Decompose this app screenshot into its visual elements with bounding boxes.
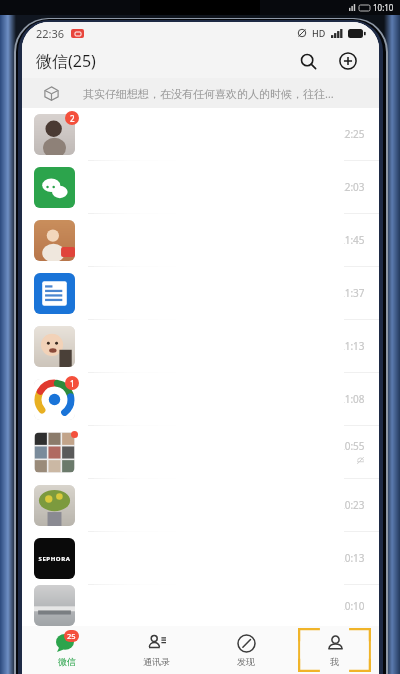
staticText: 21:08 (339, 392, 365, 406)
staticText: SEPHORA (38, 555, 71, 563)
button[interactable]: Search (293, 46, 323, 76)
button[interactable]: SEPHORA (22, 532, 379, 584)
button[interactable]: 1 (22, 373, 379, 425)
staticText: 21:45 (339, 233, 365, 247)
button[interactable]: 20:55 (22, 426, 379, 478)
staticText: 20:10 (339, 599, 365, 613)
button[interactable]: 发现 (201, 626, 290, 674)
staticText: 22:36 (36, 26, 65, 41)
staticText: 22:25 (339, 127, 365, 141)
staticText: HD (312, 27, 326, 39)
button[interactable]: 21:45 (22, 214, 379, 266)
button[interactable]: Add (333, 46, 363, 76)
button[interactable]: 21:13 (22, 320, 379, 372)
button[interactable]: 20:23 (22, 479, 379, 531)
staticText: 10:10 (373, 2, 394, 13)
button[interactable]: 22:03 (22, 161, 379, 213)
staticText: 2 (70, 113, 75, 124)
staticText: 25 (67, 631, 76, 641)
button[interactable]: 21:37 (22, 267, 379, 319)
button[interactable]: 我 (290, 626, 379, 674)
staticText: 发现 (237, 656, 255, 667)
staticText: 1 (70, 378, 75, 389)
staticText: 21:37 (339, 286, 365, 300)
staticText: 21:13 (339, 339, 365, 353)
staticText: 微信(25) (36, 50, 96, 72)
button[interactable]: 20:10 (22, 585, 379, 626)
button[interactable]: 其实仔细想想，在没有任何喜欢的人的时候，往往… (22, 78, 379, 108)
staticText: 22:03 (339, 180, 365, 194)
staticText: 20:13 (339, 551, 365, 565)
staticText: 我 (330, 656, 339, 667)
staticText: 20:23 (339, 498, 365, 512)
button[interactable]: 通讯录 (112, 626, 201, 674)
staticText: 其实仔细想想，在没有任何喜欢的人的时候，往往… (83, 86, 334, 101)
staticText: 通讯录 (143, 656, 170, 667)
staticText: 微信 (58, 656, 76, 667)
staticText: 20:55 (339, 439, 365, 453)
button[interactable]: 25 (22, 626, 112, 674)
button[interactable]: 2 (22, 108, 379, 160)
